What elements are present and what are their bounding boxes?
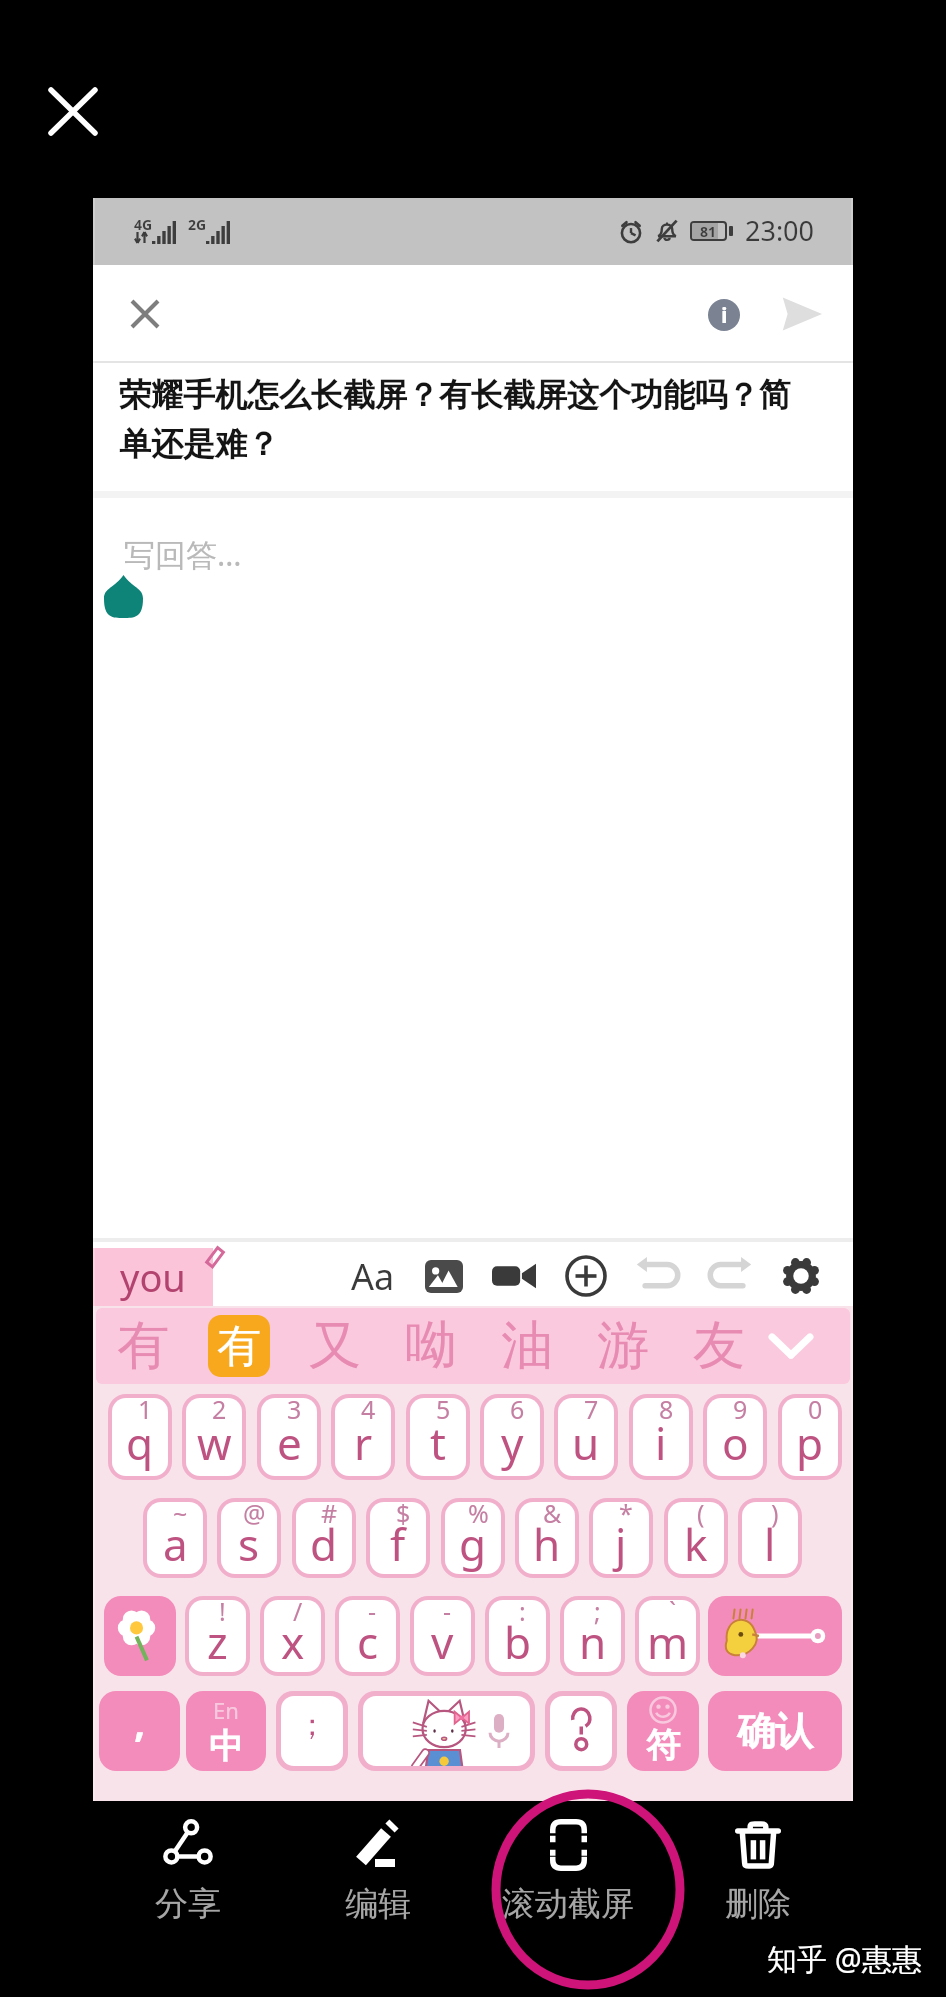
button[interactable]: Insert image xyxy=(417,1249,471,1303)
button[interactable]: w xyxy=(186,1398,242,1476)
staticText: 知乎 @惠惠 xyxy=(767,1938,922,1979)
staticText: 有 xyxy=(117,1313,169,1379)
button[interactable]: d xyxy=(296,1502,352,1574)
button[interactable]: 友 xyxy=(676,1308,762,1384)
button[interactable]: Space xyxy=(363,1696,530,1766)
staticText: k xyxy=(684,1514,708,1574)
staticText: s xyxy=(238,1514,260,1574)
button[interactable]: 有 xyxy=(196,1308,282,1384)
button[interactable]: 游 xyxy=(580,1308,666,1384)
button[interactable]: g xyxy=(445,1502,501,1574)
staticText: 油 xyxy=(501,1313,553,1379)
button[interactable]: Emoji xyxy=(104,1596,176,1676)
staticText: t xyxy=(430,1413,446,1473)
button[interactable]: u xyxy=(558,1398,614,1476)
button[interactable]: Close editor xyxy=(115,284,175,344)
button[interactable]: 删除 xyxy=(663,1819,853,1931)
staticText: r xyxy=(354,1413,373,1473)
button[interactable]: m xyxy=(639,1600,696,1672)
button[interactable]: v xyxy=(414,1600,471,1672)
staticText: v xyxy=(431,1612,454,1672)
button[interactable]: 呦 xyxy=(388,1308,474,1384)
staticText: 滚动截屏 xyxy=(502,1883,634,1925)
button[interactable]: Insert video xyxy=(487,1249,541,1303)
staticText: d xyxy=(310,1514,338,1574)
button[interactable]: j xyxy=(593,1502,649,1574)
staticText: 2G xyxy=(188,215,207,234)
staticText: you xyxy=(120,1251,186,1303)
staticText: 23:00 xyxy=(745,212,815,249)
button[interactable]: l xyxy=(742,1502,798,1574)
button[interactable]: n xyxy=(564,1600,621,1672)
staticText: ! xyxy=(219,1600,226,1628)
button[interactable]: Close xyxy=(39,77,107,145)
button[interactable]: 油 xyxy=(484,1308,570,1384)
button[interactable]: Backspace xyxy=(708,1596,842,1676)
button[interactable]: Text format xyxy=(346,1249,400,1303)
button[interactable]: Question mark xyxy=(550,1696,612,1766)
button[interactable]: Send xyxy=(772,284,832,344)
button[interactable]: you xyxy=(93,1248,213,1306)
staticText: - xyxy=(368,1600,377,1628)
button[interactable]: y xyxy=(484,1398,540,1476)
button[interactable]: b xyxy=(489,1600,546,1672)
button[interactable]: 又 xyxy=(292,1308,378,1384)
button[interactable]: Answer body xyxy=(93,498,853,1240)
staticText: 2 xyxy=(212,1398,227,1426)
staticText: 友 xyxy=(693,1313,745,1379)
staticText: 游 xyxy=(597,1313,649,1379)
staticText: 6 xyxy=(510,1398,525,1426)
button[interactable]: q xyxy=(112,1398,168,1476)
button[interactable]: 分享 xyxy=(93,1819,283,1931)
button[interactable]: Symbols xyxy=(627,1691,699,1771)
staticText: / xyxy=(293,1600,303,1628)
staticText: 又 xyxy=(309,1313,361,1379)
staticText: o xyxy=(722,1413,749,1473)
button[interactable]: r xyxy=(335,1398,391,1476)
button[interactable]: i xyxy=(633,1398,689,1476)
button[interactable]: 滚动截屏 xyxy=(473,1819,663,1931)
staticText: 删除 xyxy=(725,1883,791,1925)
staticText: 1 xyxy=(138,1398,153,1426)
staticText: , xyxy=(134,1694,146,1748)
staticText: % xyxy=(468,1502,489,1530)
button[interactable]: Hide keyboard xyxy=(751,1308,831,1384)
staticText: w xyxy=(197,1413,232,1473)
staticText: u xyxy=(572,1413,600,1473)
button[interactable]: Switch language xyxy=(186,1691,266,1771)
button[interactable]: t xyxy=(410,1398,466,1476)
button[interactable]: z xyxy=(189,1600,246,1672)
staticText: h xyxy=(533,1514,561,1574)
button[interactable]: 编辑 xyxy=(283,1819,473,1931)
staticText: y xyxy=(501,1413,524,1473)
button[interactable]: Undo xyxy=(631,1249,685,1303)
button[interactable]: h xyxy=(519,1502,575,1574)
staticText: 写回答… xyxy=(124,533,242,575)
staticText: 符 xyxy=(646,1724,680,1767)
button[interactable]: e xyxy=(261,1398,317,1476)
button[interactable]: s xyxy=(221,1502,277,1574)
button[interactable]: x xyxy=(264,1600,321,1672)
button[interactable]: o xyxy=(707,1398,763,1476)
button[interactable]: Semicolon xyxy=(281,1696,343,1766)
button[interactable]: Redo xyxy=(703,1249,757,1303)
button[interactable]: a xyxy=(147,1502,203,1574)
button[interactable]: Add xyxy=(559,1249,613,1303)
button[interactable]: p xyxy=(782,1398,838,1476)
staticText: l xyxy=(764,1514,776,1574)
button[interactable]: f xyxy=(370,1502,426,1574)
staticText: En xyxy=(213,1695,239,1725)
staticText: - xyxy=(443,1600,452,1628)
button[interactable]: Info xyxy=(694,285,754,345)
button[interactable]: Confirm xyxy=(708,1691,842,1771)
button[interactable]: Settings xyxy=(774,1249,828,1303)
button[interactable]: k xyxy=(668,1502,724,1574)
button[interactable]: Comma xyxy=(99,1691,180,1771)
staticText: * xyxy=(619,1502,633,1530)
staticText: & xyxy=(543,1502,562,1530)
staticText: q xyxy=(126,1413,154,1473)
button[interactable]: c xyxy=(339,1600,396,1672)
button[interactable]: 有 xyxy=(100,1308,186,1384)
staticText: 9 xyxy=(733,1398,748,1426)
staticText: c xyxy=(357,1612,379,1672)
